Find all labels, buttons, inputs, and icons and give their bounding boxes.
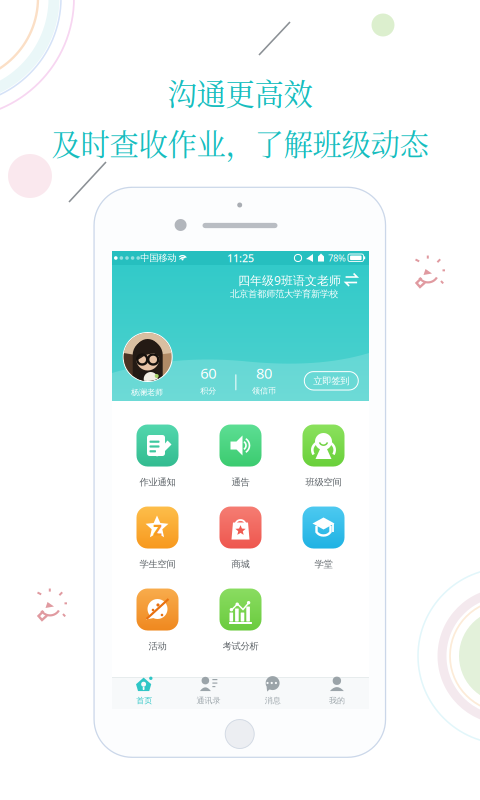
staticText: 商城 xyxy=(231,558,249,570)
button[interactable]: 切换班级 xyxy=(339,267,365,293)
staticText: 学堂 xyxy=(314,558,332,570)
staticText: 作业通知 xyxy=(139,476,175,488)
button[interactable]: 我的 xyxy=(305,677,369,709)
button[interactable]: 作业通知 xyxy=(116,424,199,494)
staticText: 我的 xyxy=(329,696,345,705)
staticText: 通讯录 xyxy=(196,696,220,705)
staticText: 沟通更高效 xyxy=(167,71,312,113)
staticText: 中国移动 xyxy=(140,252,176,264)
staticText: 班级空间 xyxy=(305,476,341,488)
staticText: 积分 xyxy=(200,386,216,396)
button[interactable]: 考试分析 xyxy=(199,588,282,658)
staticText: z xyxy=(153,516,162,541)
staticText: 消息 xyxy=(265,696,281,705)
staticText: 考试分析 xyxy=(222,640,258,652)
staticText: 立即签到 xyxy=(313,375,349,387)
staticText: 78% xyxy=(328,252,346,264)
button[interactable]: 消息 xyxy=(240,677,305,709)
button[interactable]: 班级空间 xyxy=(282,424,365,494)
button[interactable]: 立即签到 xyxy=(300,368,362,394)
staticText: 北京首都师范大学育新学校 xyxy=(230,288,338,300)
button[interactable]: 通告 xyxy=(199,424,282,494)
staticText: 四年级9班语文老师 xyxy=(238,272,341,288)
button[interactable]: z xyxy=(116,506,199,576)
staticText: 杨澜老师 xyxy=(131,387,163,397)
staticText: 80 xyxy=(256,363,272,383)
button[interactable]: 学堂 xyxy=(282,506,365,576)
staticText: 领信币 xyxy=(252,386,276,396)
button[interactable]: 活动 xyxy=(116,588,199,658)
staticText: 学生空间 xyxy=(139,558,175,570)
button[interactable]: 首页 xyxy=(112,677,176,709)
button[interactable]: 商城 xyxy=(199,506,282,576)
staticText: 60 xyxy=(200,363,216,383)
staticText: 活动 xyxy=(148,640,166,652)
staticText: 首页 xyxy=(136,696,152,705)
button[interactable]: 通讯录 xyxy=(176,677,240,709)
staticText: 11:25 xyxy=(227,251,254,265)
staticText: 通告 xyxy=(231,476,249,488)
staticText: 及时查收作业，了解班级动态 xyxy=(51,121,428,164)
